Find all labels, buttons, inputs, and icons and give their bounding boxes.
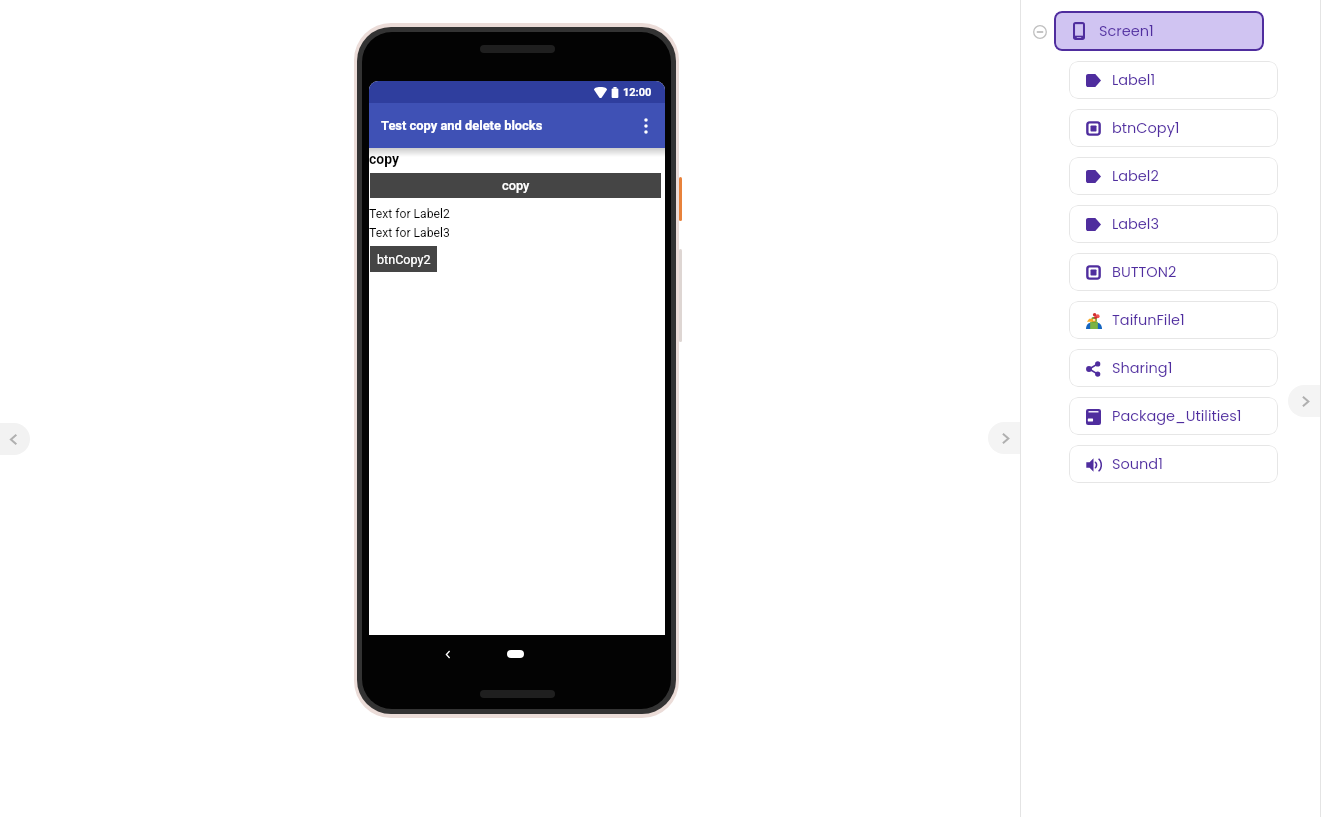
button[interactable]: Screen1 [1054, 11, 1264, 51]
staticText: Screen1 [1099, 21, 1154, 41]
button[interactable]: BUTTON2 [1069, 253, 1278, 291]
staticText: Label3 [1112, 214, 1159, 234]
button[interactable]: copy [370, 173, 661, 198]
staticText: TaifunFile1 [1112, 310, 1185, 330]
staticText: copy [369, 151, 400, 167]
staticText: Package_Utilities1 [1112, 406, 1242, 426]
staticText: 12:00 [623, 86, 652, 99]
button[interactable]: Expand viewer panel [988, 422, 1020, 454]
staticText: Text for Label3 [369, 226, 450, 240]
staticText: btnCopy1 [1112, 118, 1180, 138]
staticText: Sound1 [1112, 454, 1163, 474]
staticText: Text for Label2 [369, 207, 450, 221]
button[interactable]: Collapse Screen1 [1032, 24, 1048, 40]
staticText: Label1 [1112, 70, 1156, 90]
staticText: Sharing1 [1112, 358, 1173, 378]
staticText: btnCopy2 [377, 252, 431, 267]
button[interactable]: Collapse palette panel [0, 423, 30, 455]
button[interactable]: Sharing1 [1069, 349, 1278, 387]
button[interactable]: Sound1 [1069, 445, 1278, 483]
button[interactable]: TaifunFile1 [1069, 301, 1278, 339]
button[interactable]: btnCopy1 [1069, 109, 1278, 147]
button[interactable]: Label3 [1069, 205, 1278, 243]
button[interactable]: More options [635, 115, 657, 137]
button[interactable]: Home [507, 650, 524, 658]
staticText: Label2 [1112, 166, 1159, 186]
staticText: Test copy and delete blocks [381, 118, 543, 133]
button[interactable]: Label2 [1069, 157, 1278, 195]
button[interactable]: Label1 [1069, 61, 1278, 99]
staticText: BUTTON2 [1112, 262, 1177, 282]
button[interactable]: btnCopy2 [370, 246, 437, 272]
button[interactable]: Back [440, 646, 456, 662]
staticText: copy [502, 178, 530, 193]
button[interactable]: Expand properties panel [1288, 385, 1320, 417]
button[interactable]: Package_Utilities1 [1069, 397, 1278, 435]
